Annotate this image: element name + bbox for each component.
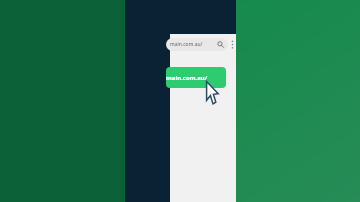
other: Search — [217, 41, 224, 48]
button[interactable]: main.com.au/cpanel — [166, 38, 228, 51]
button[interactable]: More options — [230, 38, 235, 51]
staticText: main.com.au/cpanel — [166, 74, 226, 82]
button[interactable]: main.com.au/cpanel — [166, 67, 226, 88]
staticText: main.com.au/cpanel — [170, 41, 214, 48]
